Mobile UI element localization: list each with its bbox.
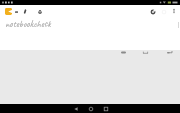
button[interactable]: Home [84, 104, 97, 113]
button[interactable]: Pen tool [20, 7, 29, 16]
button[interactable]: Keyboard [12, 7, 21, 16]
button[interactable]: Back [69, 104, 82, 113]
button[interactable]: Return key [163, 46, 176, 59]
staticText: notebookcheck [5, 18, 51, 30]
button[interactable]: Rotate page [147, 6, 158, 17]
button[interactable]: More options [169, 6, 179, 16]
button[interactable]: Spacebar [139, 46, 152, 59]
button[interactable]: Print [35, 7, 44, 16]
button[interactable]: Recent apps [99, 104, 112, 113]
button[interactable]: Notes app [2, 5, 14, 17]
button[interactable]: Show keyboard [117, 46, 130, 59]
